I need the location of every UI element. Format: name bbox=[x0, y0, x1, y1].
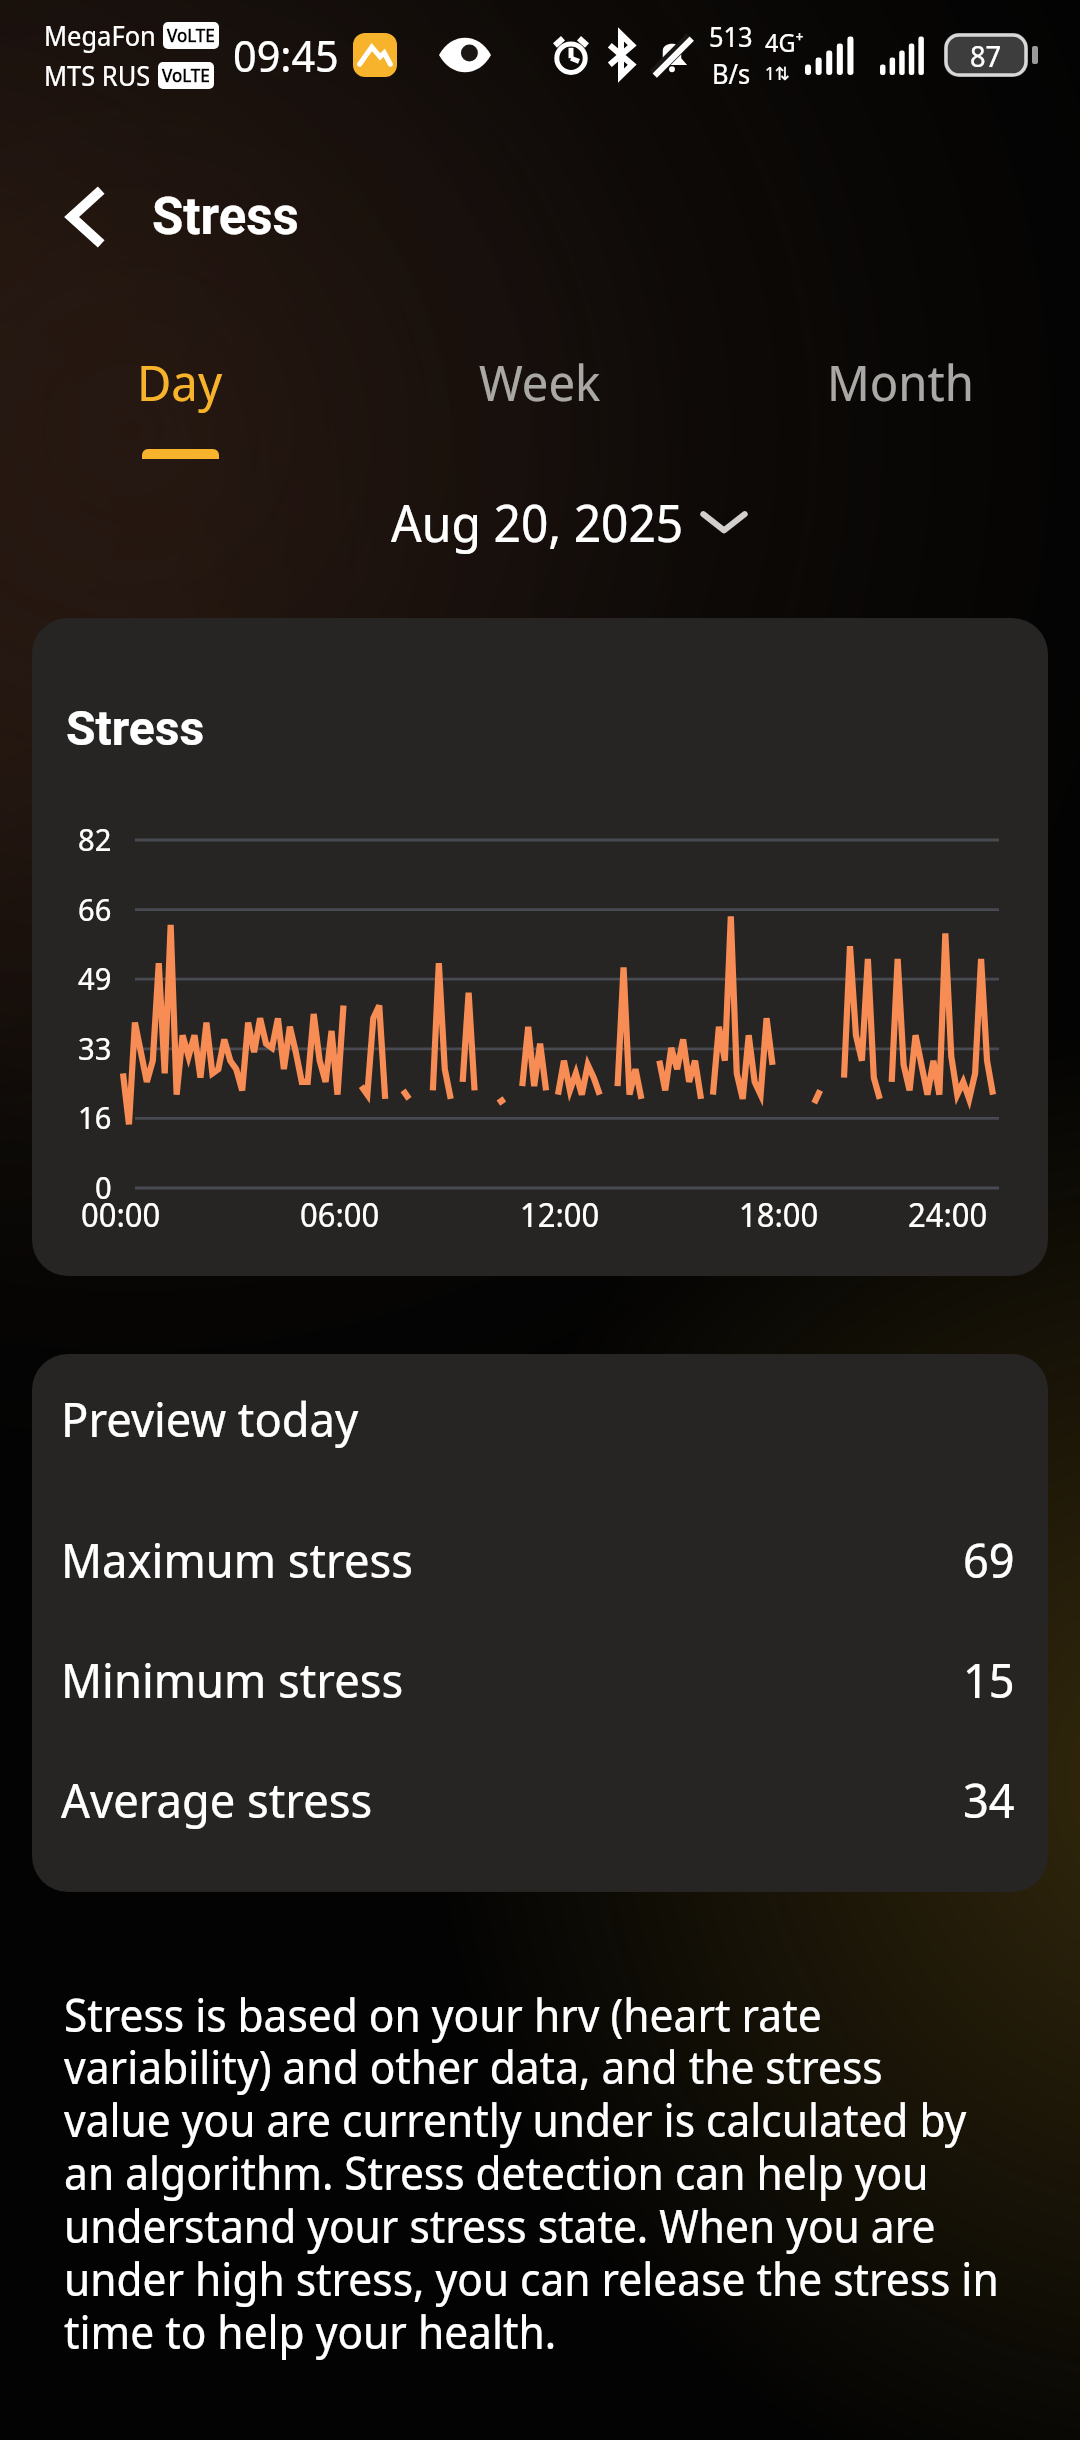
staticText: 00:00 bbox=[81, 1192, 161, 1237]
staticText: B/s bbox=[712, 55, 751, 92]
button[interactable]: Average stress bbox=[32, 1739, 1048, 1859]
staticText: 82 bbox=[78, 818, 112, 860]
staticText: VoLTE bbox=[162, 63, 210, 88]
staticText: 06:00 bbox=[300, 1192, 380, 1237]
button[interactable]: Aug 20, 2025 bbox=[334, 487, 747, 556]
staticText: 18:00 bbox=[739, 1192, 819, 1237]
staticText: 16 bbox=[78, 1096, 112, 1138]
staticText: 87 bbox=[970, 36, 1002, 75]
staticText: Stress bbox=[66, 700, 205, 756]
button[interactable]: Back bbox=[31, 162, 141, 272]
staticText: Maximum stress bbox=[61, 1527, 413, 1592]
staticText: Average stress bbox=[61, 1767, 373, 1832]
staticText: Day bbox=[137, 348, 223, 416]
staticText: Week bbox=[479, 348, 601, 416]
staticText: Aug 20, 2025 bbox=[391, 487, 684, 556]
button[interactable]: Month bbox=[720, 348, 1080, 449]
staticText: 513 bbox=[709, 18, 753, 55]
staticText: 34 bbox=[963, 1767, 1015, 1832]
button[interactable]: Minimum stress bbox=[32, 1619, 1048, 1739]
staticText: 24:00 bbox=[908, 1192, 988, 1237]
staticText: 69 bbox=[963, 1527, 1015, 1592]
staticText: 15 bbox=[963, 1647, 1015, 1712]
staticText: VoLTE bbox=[167, 23, 215, 48]
staticText: MegaFon bbox=[44, 17, 156, 54]
staticText: Preview today bbox=[61, 1386, 359, 1451]
staticText: 4G⁺ bbox=[765, 25, 804, 59]
staticText: MTS RUS bbox=[44, 57, 151, 94]
staticText: Month bbox=[827, 348, 974, 416]
button[interactable]: Week bbox=[360, 348, 720, 449]
staticText: 66 bbox=[78, 888, 112, 930]
staticText: Stress bbox=[152, 187, 299, 247]
staticText: 49 bbox=[78, 957, 112, 999]
button[interactable]: Stress bbox=[32, 618, 1048, 1276]
staticText: 0 bbox=[95, 1166, 112, 1208]
button[interactable]: Day bbox=[0, 348, 360, 459]
button[interactable]: Eye protection bbox=[439, 39, 491, 71]
button[interactable]: Maximum stress bbox=[32, 1499, 1048, 1619]
staticText: Minimum stress bbox=[61, 1647, 404, 1712]
staticText: 09:45 bbox=[233, 25, 339, 85]
staticText: 1⇅ bbox=[765, 61, 790, 86]
staticText: 12:00 bbox=[520, 1192, 600, 1237]
staticText: 33 bbox=[78, 1027, 112, 1069]
staticText: Stress is based on your hrv (heart rate … bbox=[64, 1984, 1000, 2362]
